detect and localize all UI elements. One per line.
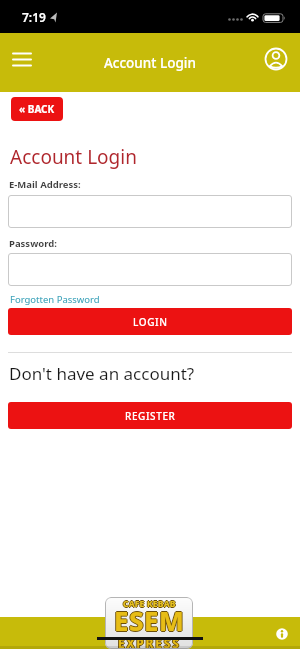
staticText: CAFE KEBAB — [123, 599, 176, 611]
staticText: E-Mail Address: — [9, 178, 81, 191]
staticText: CAFE KEBAB — [123, 598, 176, 610]
staticText: EXPRESS — [118, 635, 181, 649]
staticText: ESEM — [114, 603, 185, 638]
staticText: CAFE KEBAB — [123, 597, 176, 609]
staticText: EXPRESS — [119, 635, 182, 649]
staticText: CAFE KEBAB — [124, 598, 177, 610]
staticText: Account Login — [104, 54, 196, 72]
staticText: Account Login — [10, 144, 137, 170]
staticText: Password: — [9, 237, 57, 250]
staticText: ESEM — [114, 602, 185, 637]
staticText: REGISTER — [125, 409, 176, 423]
staticText: EXPRESS — [118, 634, 181, 649]
staticText: EXPRESS — [117, 635, 180, 649]
staticText: Don't have an account? — [9, 362, 195, 385]
staticText: ESEM — [113, 603, 184, 638]
staticText: CAFE KEBAB — [122, 598, 175, 610]
staticText: LOGIN — [133, 315, 168, 329]
staticText: ESEM — [115, 603, 186, 638]
staticText: 7:19 — [22, 9, 46, 25]
staticText: « BACK — [19, 102, 55, 116]
staticText: Forgotten Password — [10, 293, 100, 306]
staticText: ESEM — [114, 604, 185, 639]
staticText: EXPRESS — [118, 636, 181, 649]
